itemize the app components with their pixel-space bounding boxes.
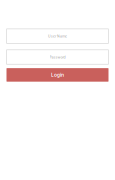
button[interactable]: Login — [6, 68, 108, 82]
staticText: Password — [49, 55, 65, 59]
staticText: Login — [51, 72, 64, 78]
button[interactable]: Password — [6, 50, 108, 64]
button[interactable]: User Name — [6, 29, 108, 43]
staticText: User Name — [48, 34, 67, 38]
